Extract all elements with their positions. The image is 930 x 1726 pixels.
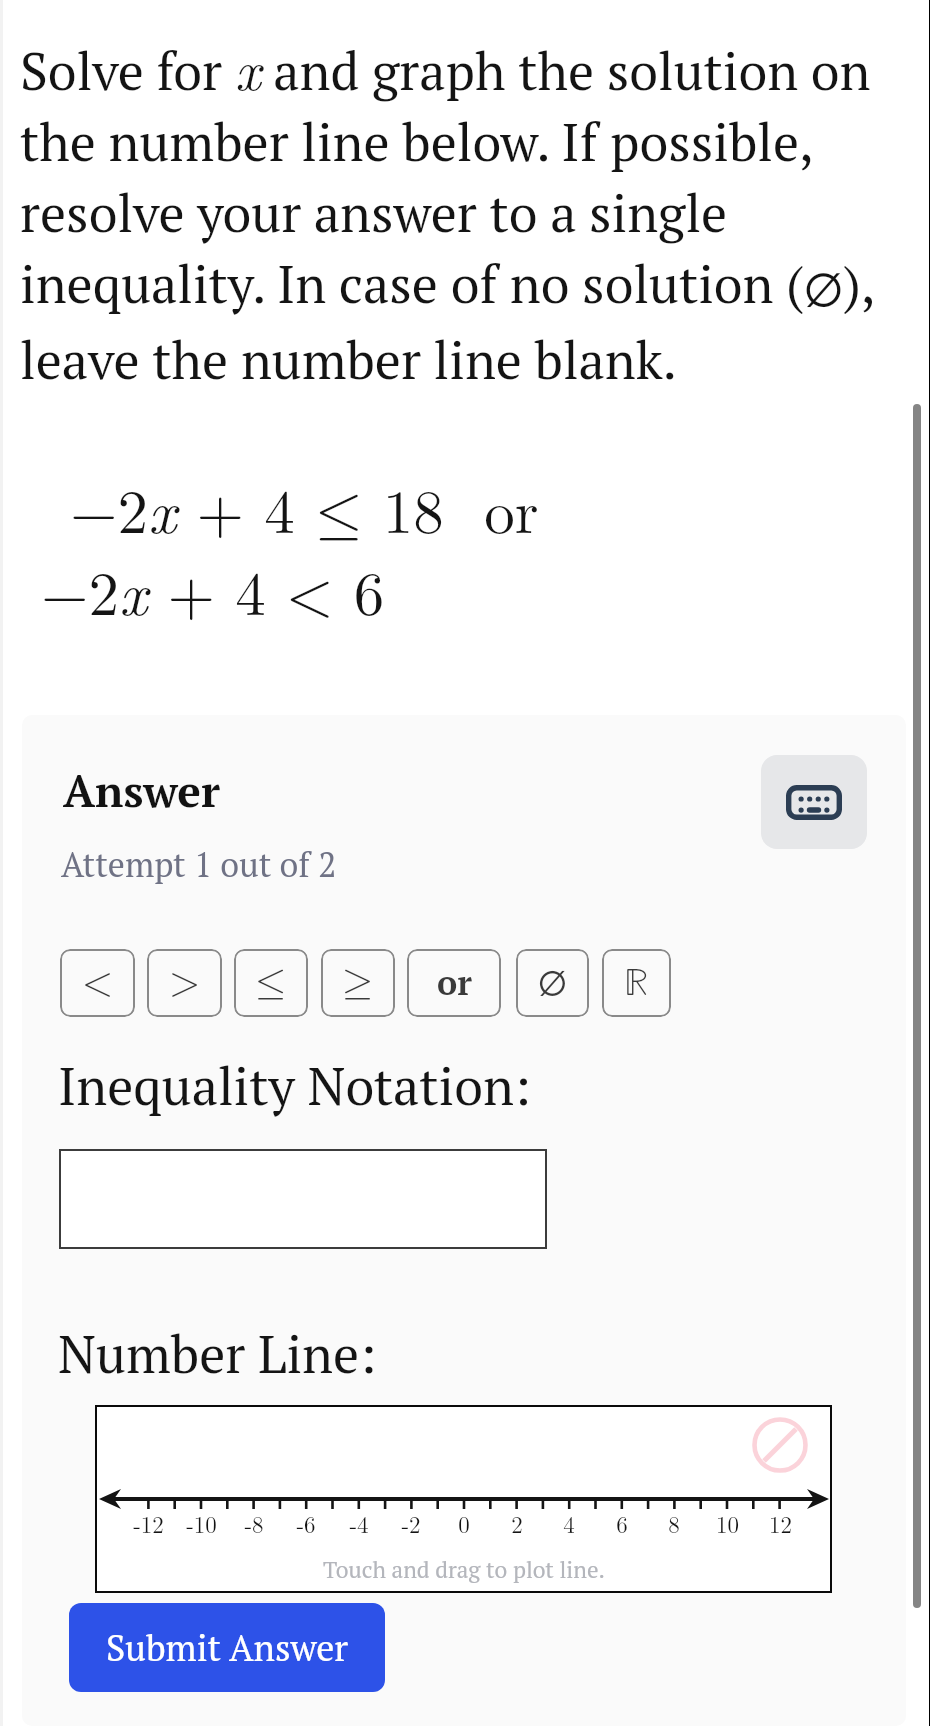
staticText: Solve for x and graph the solution on th… [20,27,892,394]
button[interactable]: Submit Answer [69,1603,385,1692]
staticText: ≤ [255,963,287,1003]
button[interactable]: ∅ [516,949,589,1017]
staticText: 4 [563,1507,575,1540]
staticText: -8 [244,1507,264,1540]
staticText: 12 [769,1507,792,1540]
staticText: ∅ [538,965,567,1002]
staticText: ≥ [342,963,374,1003]
staticText: -4 [349,1507,369,1540]
button[interactable]: Number line plot area [95,1405,832,1593]
staticText: −2x + 4 ≤ 18 or [70,464,539,550]
staticText: Answer [63,761,220,819]
staticText: Attempt 1 out of 2 [61,842,337,887]
button[interactable]: Open math keyboard [761,755,867,849]
staticText: -6 [296,1507,316,1540]
button[interactable]: or [407,949,501,1017]
staticText: 0 [458,1507,470,1540]
button[interactable]: ℝ [602,949,671,1017]
staticText: -12 [133,1507,164,1540]
staticText: ℝ [624,964,649,1002]
staticText: < [82,963,114,1003]
staticText: −2x + 4 < 6 [41,546,385,632]
staticText: Inequality Notation: [58,1051,531,1120]
staticText: -2 [401,1507,421,1540]
staticText: 6 [616,1507,628,1540]
staticText: > [169,963,201,1003]
staticText: -10 [186,1507,217,1540]
button[interactable]: > [147,949,222,1017]
staticText: 8 [668,1507,680,1540]
staticText: 2 [511,1507,523,1540]
staticText: Submit Answer [106,1624,349,1672]
button[interactable]: < [60,949,135,1017]
button[interactable]: Inequality notation answer field [59,1149,547,1249]
button[interactable]: ≤ [234,949,308,1017]
staticText: Number Line: [58,1319,377,1388]
staticText: 10 [716,1507,739,1540]
staticText: Touch and drag to plot line. [323,1554,605,1584]
button[interactable]: ≥ [321,949,395,1017]
staticText: or [437,960,472,1005]
